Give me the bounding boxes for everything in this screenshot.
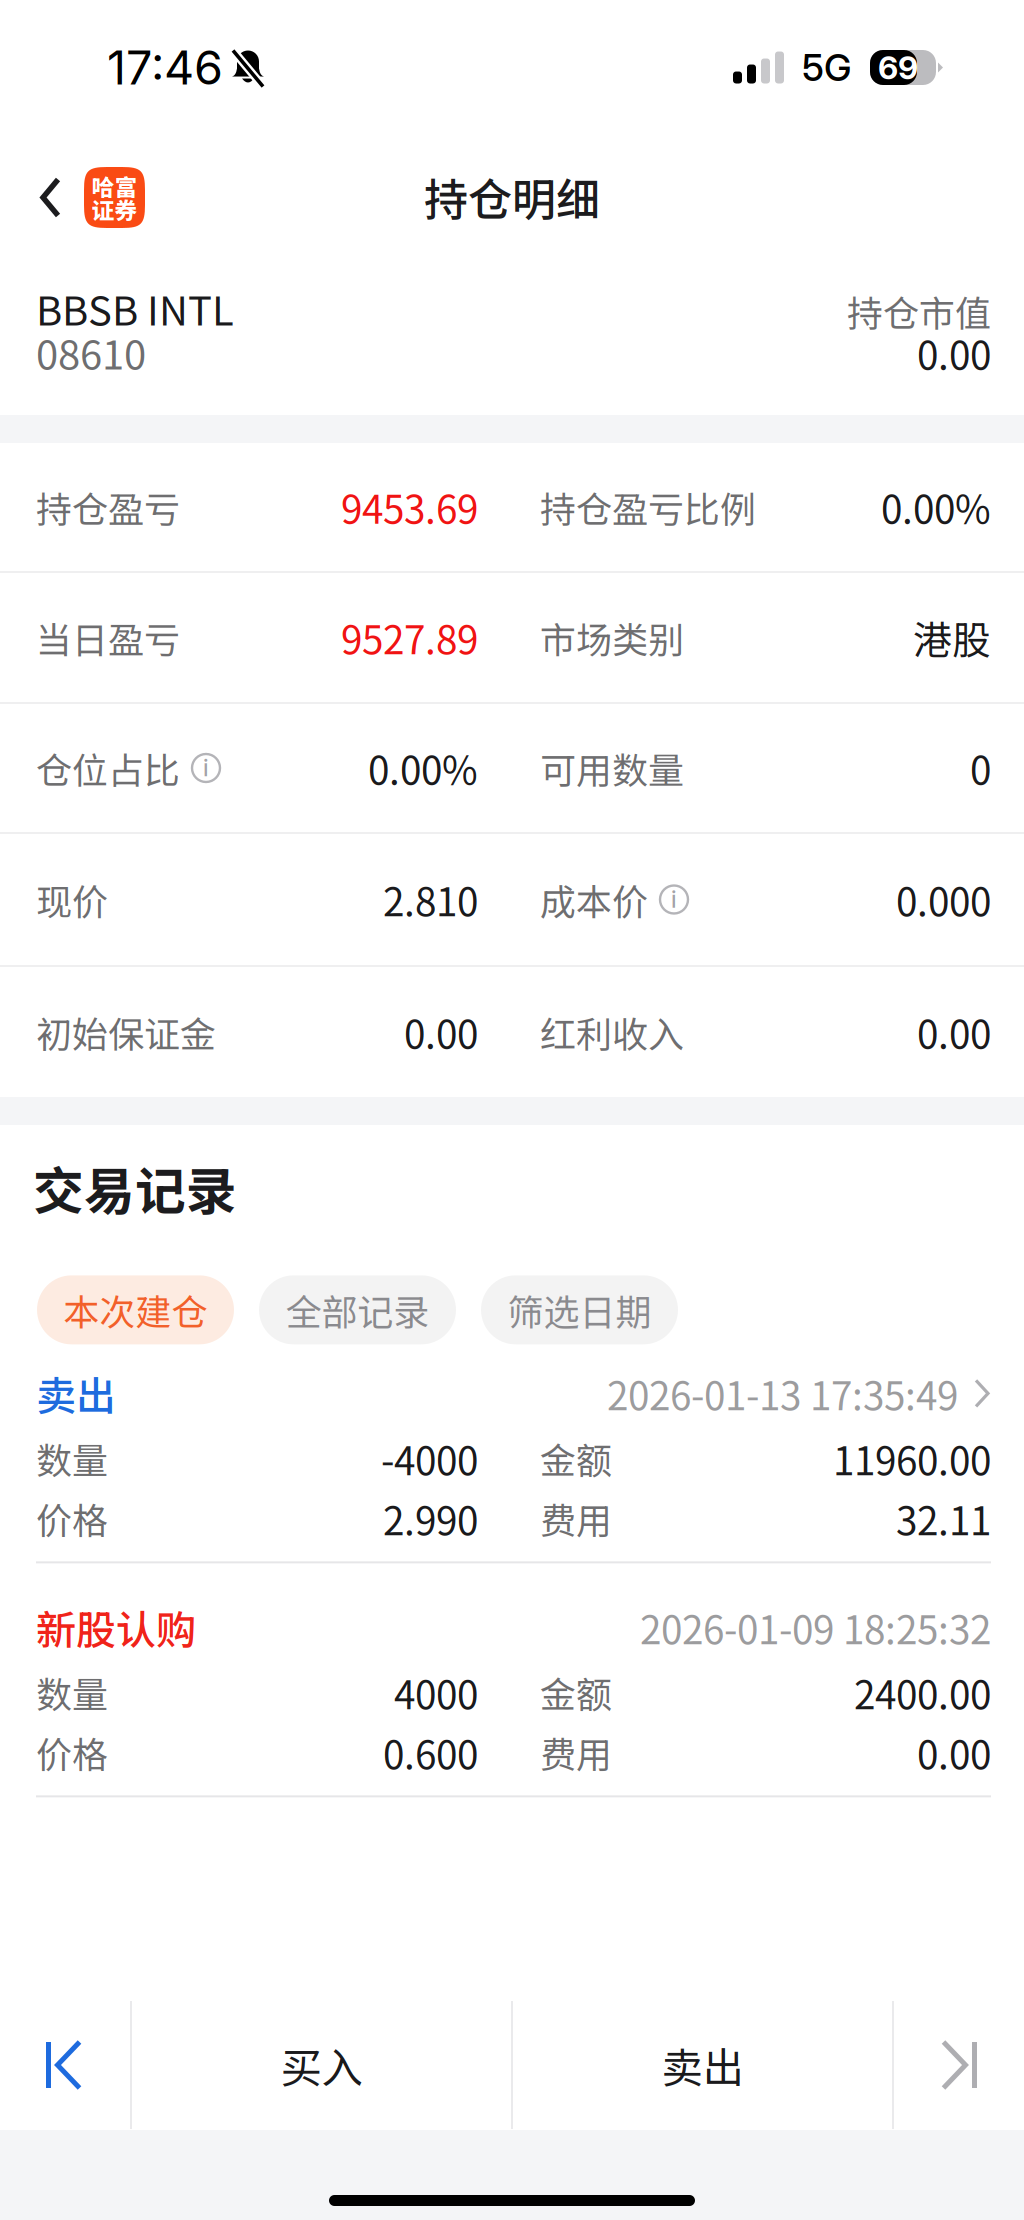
- staticText: 全部记录: [285, 1284, 429, 1336]
- staticText: 数量: [36, 1432, 108, 1484]
- button[interactable]: First page: [0, 2000, 130, 2130]
- staticText: 卖出: [661, 2035, 743, 2095]
- staticText: 08610: [36, 323, 146, 381]
- staticText: 本次建仓: [63, 1284, 207, 1336]
- staticText: 交易记录: [33, 1151, 237, 1224]
- staticText: 32.11: [896, 1490, 991, 1546]
- staticText: 2026-01-13 17:35:49: [607, 1365, 958, 1421]
- staticText: 持仓盈亏: [36, 481, 180, 533]
- staticText: 0.00: [917, 1004, 991, 1060]
- staticText: 2400.00: [854, 1664, 991, 1720]
- staticText: 0.00: [404, 1004, 478, 1060]
- staticText: 金额: [540, 1432, 612, 1484]
- staticText: 9527.89: [341, 609, 478, 665]
- button[interactable]: Last page: [894, 2000, 1024, 2130]
- staticText: 红利收入: [540, 1006, 684, 1058]
- staticText: 当日盈亏: [36, 611, 180, 663]
- button[interactable]: Back: [0, 140, 165, 255]
- staticText: i: [203, 754, 209, 782]
- staticText: 仓位占比: [36, 742, 180, 794]
- staticText: 5G: [802, 45, 851, 90]
- staticText: 17:46: [107, 39, 223, 96]
- staticText: 市场类别: [540, 611, 684, 663]
- staticText: 4000: [394, 1664, 478, 1720]
- staticText: 证券: [91, 193, 137, 225]
- staticText: 数量: [36, 1666, 108, 1718]
- staticText: 11960.00: [833, 1430, 991, 1486]
- staticText: 0: [970, 740, 991, 796]
- staticText: 价格: [36, 1492, 108, 1544]
- staticText: 2.810: [383, 871, 478, 927]
- staticText: 金额: [540, 1666, 612, 1718]
- staticText: 可用数量: [540, 742, 684, 794]
- staticText: 持仓明细: [424, 165, 600, 228]
- staticText: 买入: [280, 2035, 362, 2095]
- staticText: 新股认购: [36, 1598, 196, 1656]
- staticText: 69: [878, 48, 918, 87]
- button[interactable]: 全部记录: [259, 1275, 456, 1344]
- staticText: 2026-01-09 18:25:32: [640, 1599, 991, 1655]
- staticText: 费用: [540, 1726, 612, 1778]
- button[interactable]: 本次建仓: [37, 1275, 234, 1344]
- button[interactable]: 卖出: [513, 2000, 892, 2130]
- staticText: 港股: [913, 609, 991, 665]
- staticText: 9453.69: [341, 479, 478, 535]
- staticText: 持仓盈亏比例: [540, 481, 756, 533]
- staticText: 0.00: [917, 325, 991, 381]
- staticText: 价格: [36, 1726, 108, 1778]
- staticText: 卖出: [36, 1364, 116, 1422]
- staticText: 成本价: [540, 873, 648, 925]
- staticText: 0.000: [896, 871, 991, 927]
- staticText: 0.00%: [881, 479, 991, 535]
- staticText: 0.00%: [368, 740, 478, 796]
- staticText: 初始保证金: [36, 1006, 216, 1058]
- staticText: 现价: [36, 873, 108, 925]
- staticText: 0.00: [917, 1724, 991, 1780]
- staticText: 筛选日期: [507, 1284, 651, 1336]
- staticText: BBSB INTL: [36, 279, 234, 337]
- button[interactable]: 筛选日期: [481, 1275, 678, 1344]
- staticText: 2.990: [383, 1490, 478, 1546]
- staticText: 持仓市值: [847, 285, 991, 337]
- staticText: 0.600: [383, 1724, 478, 1780]
- button[interactable]: 买入: [132, 2000, 511, 2130]
- staticText: 哈富: [91, 170, 137, 202]
- staticText: i: [671, 886, 677, 913]
- staticText: 费用: [540, 1492, 612, 1544]
- staticText: -4000: [381, 1430, 478, 1486]
